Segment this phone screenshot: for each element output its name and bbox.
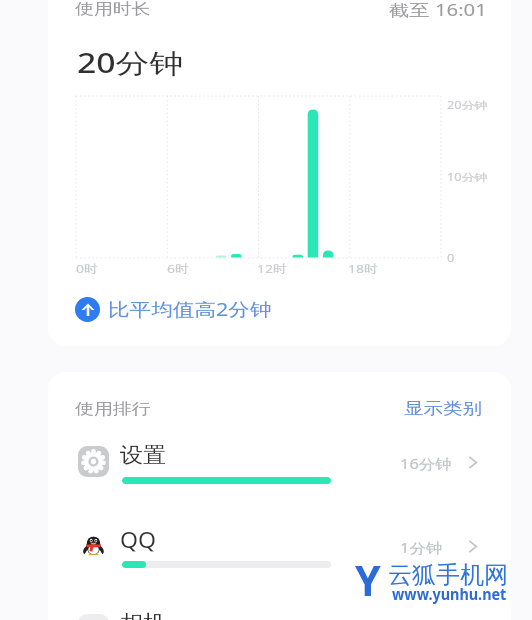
staticText: 设置 [120,442,166,468]
staticText: 相机 [120,610,166,620]
staticText: www.yunhu.net [392,583,507,605]
staticText: 12时 [257,261,287,277]
staticText: 1分钟 [400,539,443,557]
staticText: 显示类别 [404,399,482,419]
staticText: 比平均值高2分钟 [108,297,272,322]
staticText: Y [355,552,381,608]
staticText: 16分钟 [400,455,452,473]
button[interactable]: QQ [48,522,511,606]
staticText: 使用时长 [75,0,151,19]
button[interactable]: 相机 [48,606,511,620]
staticText: 云狐手机网 [388,560,508,590]
staticText: 20分钟 [447,98,488,112]
staticText: 0 [447,251,455,265]
staticText: 使用排行 [75,399,151,419]
button[interactable]: 显示类别 [404,399,468,419]
staticText: 截至 16:01 [389,0,488,21]
button[interactable]: 设置 [48,438,511,522]
staticText: 6时 [167,261,190,277]
staticText: 18时 [348,261,378,277]
staticText: 10分钟 [447,170,488,184]
staticText: QQ [120,526,156,555]
button[interactable]: 比平均值高2分钟 [75,297,245,322]
staticText: 0时 [76,261,99,277]
staticText: 20分钟 [77,44,183,81]
